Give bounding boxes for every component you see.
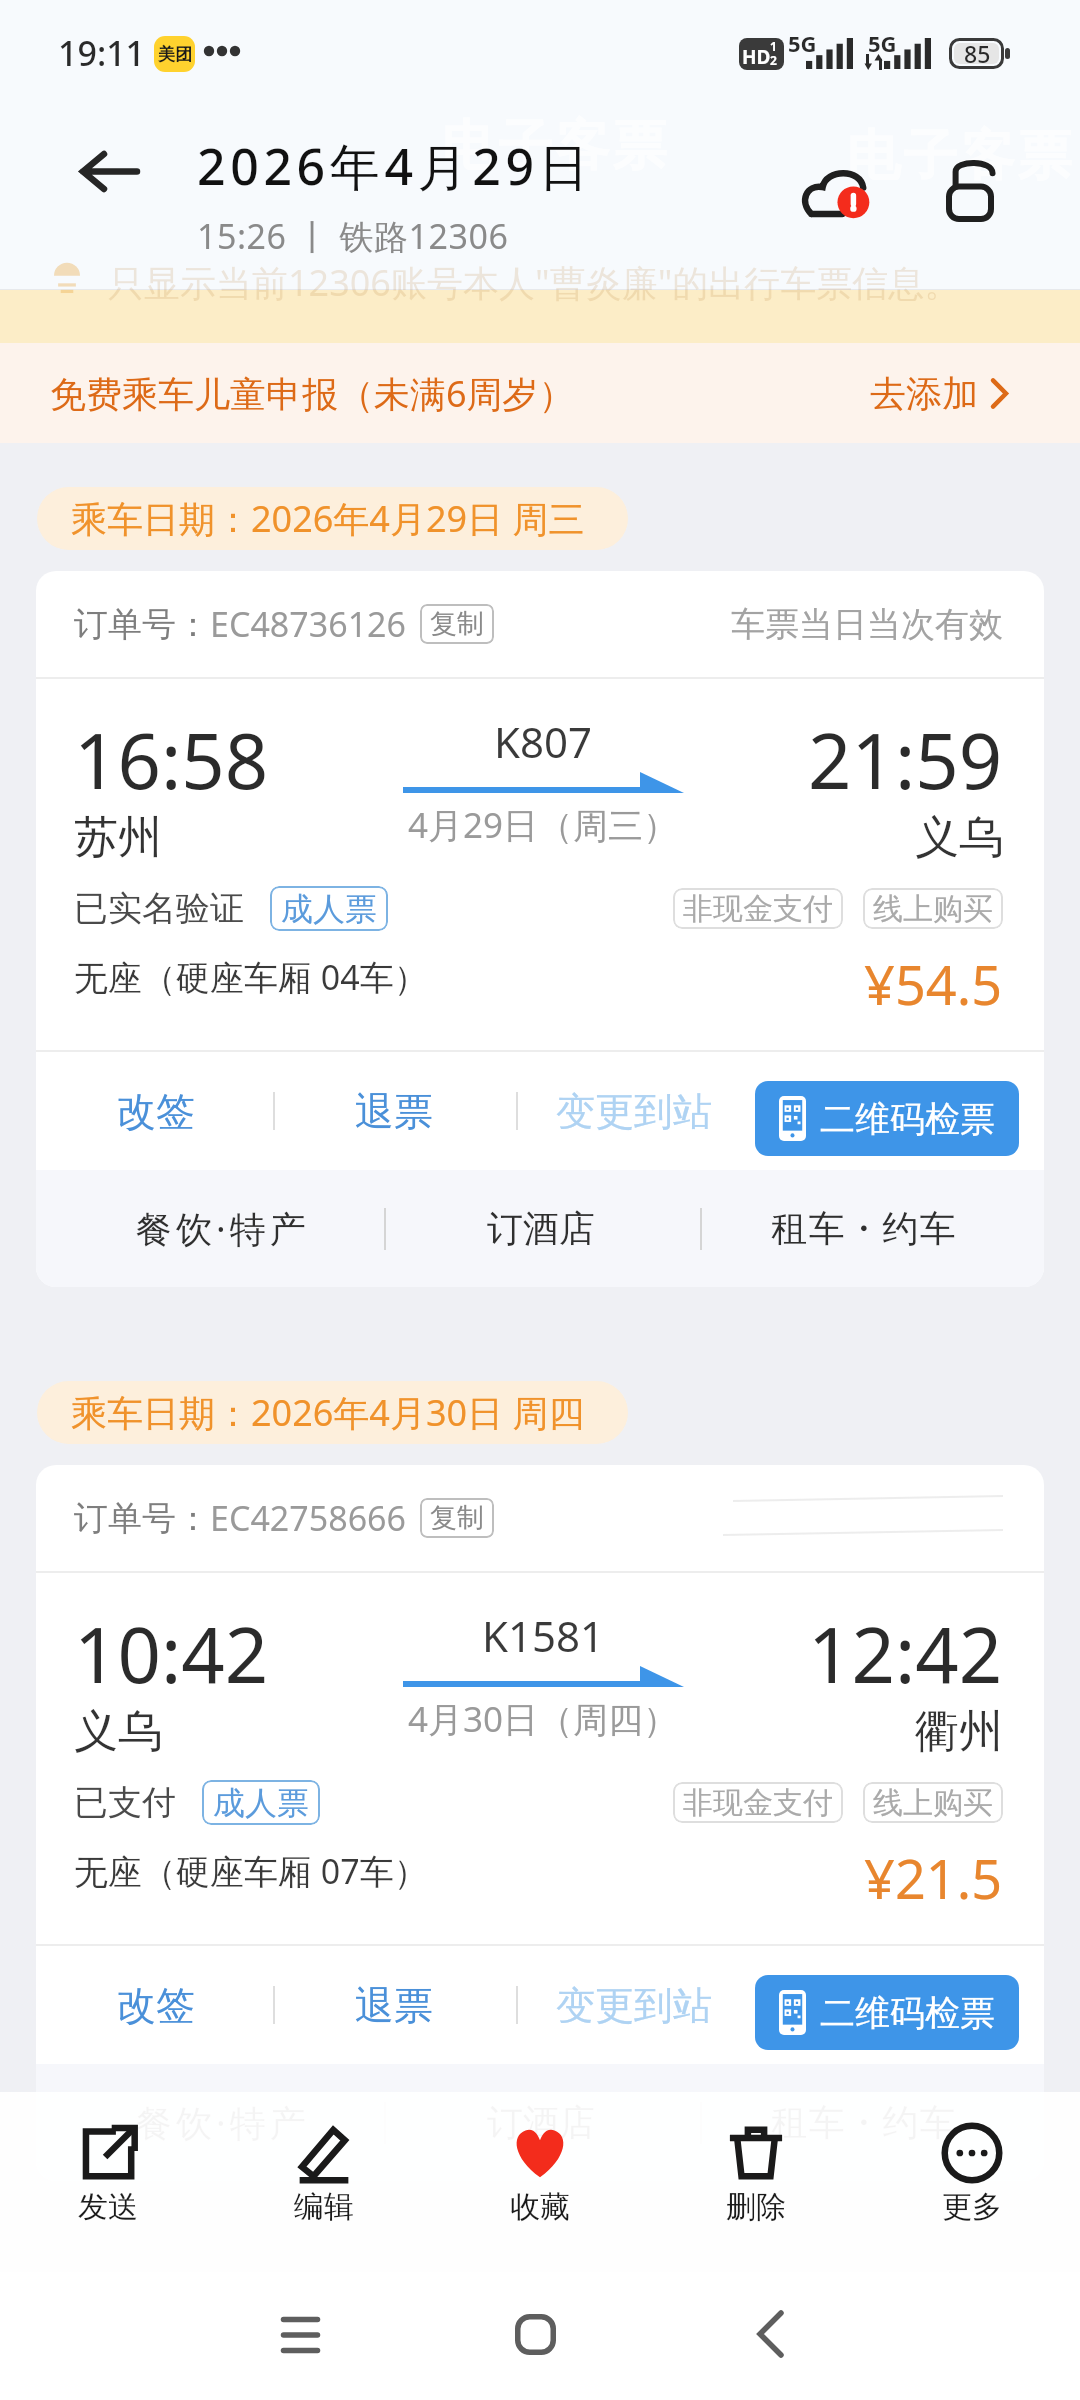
button[interactable]: 退票 bbox=[314, 1946, 474, 2064]
staticText: 12:42 bbox=[808, 1602, 1003, 1706]
button[interactable]: 订单号： bbox=[36, 1465, 1044, 1571]
button[interactable]: 订酒店 bbox=[461, 2064, 621, 2181]
staticText: 租车・约车 bbox=[771, 1206, 956, 1251]
staticText: 餐饮·特产 bbox=[136, 1204, 310, 1253]
staticText: 乘车日期：2026年4月29日 周三 bbox=[71, 494, 585, 543]
button[interactable]: 删除 bbox=[648, 2092, 864, 2272]
staticText: 成人票 bbox=[281, 889, 377, 929]
staticText: 美团 bbox=[158, 44, 192, 65]
button[interactable]: 主页 bbox=[500, 2299, 570, 2369]
staticText: 复制 bbox=[430, 607, 484, 641]
staticText: 编辑 bbox=[294, 2188, 354, 2226]
staticText: 15:26 丨 铁路12306 bbox=[197, 213, 509, 259]
staticText: 发送 bbox=[78, 2188, 138, 2226]
staticText: EC48736126 bbox=[210, 601, 406, 647]
staticText: 电子客票 bbox=[440, 112, 668, 180]
button[interactable]: 返回 bbox=[70, 131, 150, 211]
staticText: 变更到站 bbox=[556, 1981, 712, 2030]
staticText: 非现金支付 bbox=[683, 890, 833, 928]
staticText: 改签 bbox=[117, 1981, 195, 2030]
button[interactable]: 改签 bbox=[76, 1946, 236, 2064]
staticText: 2026年4月29日 bbox=[197, 132, 594, 200]
staticText: 车票当日当次有效 bbox=[731, 603, 1003, 646]
staticText: 成人票 bbox=[213, 1783, 309, 1823]
button[interactable]: 改签 bbox=[76, 1052, 236, 1170]
staticText: 4月29日（周三） bbox=[408, 801, 679, 849]
staticText: 19:11 bbox=[58, 30, 146, 76]
staticText: 删除 bbox=[726, 2188, 786, 2226]
staticText: 变更到站 bbox=[556, 1087, 712, 1136]
staticText: 衢州 bbox=[915, 1704, 1003, 1759]
button[interactable]: 解锁 bbox=[922, 143, 1018, 239]
staticText: 义乌 bbox=[74, 1704, 162, 1759]
staticText: 退票 bbox=[355, 1981, 433, 2030]
button[interactable]: 返回 bbox=[735, 2299, 805, 2369]
button[interactable]: 乘车日期：2026年4月30日 周四 bbox=[37, 1381, 628, 1444]
button[interactable]: 餐饮·特产 bbox=[112, 2064, 333, 2181]
staticText: ¥54.5 bbox=[864, 947, 1003, 1007]
staticText: 复制 bbox=[430, 1501, 484, 1535]
staticText: 只显示当前12306账号本人"曹炎廉"的出行车票信息。 bbox=[108, 258, 961, 307]
staticText: 订酒店 bbox=[487, 2100, 595, 2145]
staticText: 退票 bbox=[355, 1087, 433, 1136]
staticText: 线上购买 bbox=[873, 890, 993, 928]
staticText: 已支付 bbox=[74, 1781, 176, 1824]
button[interactable]: 二维码检票 bbox=[755, 1975, 1019, 2050]
staticText: 1 bbox=[770, 38, 777, 54]
staticText: 订单号： bbox=[74, 603, 210, 646]
button[interactable]: 收藏 bbox=[432, 2092, 648, 2272]
button[interactable]: 租车・约车 bbox=[753, 1170, 974, 1287]
button[interactable]: 退票 bbox=[314, 1052, 474, 1170]
button[interactable]: 最近任务 bbox=[265, 2300, 335, 2370]
staticText: 乘车日期：2026年4月30日 周四 bbox=[71, 1388, 585, 1437]
staticText: K807 bbox=[494, 713, 593, 770]
staticText: K1581 bbox=[482, 1607, 605, 1664]
button[interactable]: 云同步异常 bbox=[790, 144, 886, 240]
staticText: 义乌 bbox=[915, 810, 1003, 865]
staticText: 85 bbox=[964, 38, 991, 69]
staticText: 订酒店 bbox=[487, 1206, 595, 1251]
staticText: 二维码检票 bbox=[820, 1097, 995, 1141]
staticText: 改签 bbox=[117, 1087, 195, 1136]
button[interactable]: 发送 bbox=[0, 2092, 216, 2272]
button[interactable]: 租车・约车 bbox=[753, 2064, 974, 2181]
staticText: 订单号： bbox=[74, 1497, 210, 1540]
staticText: 5G bbox=[788, 28, 817, 58]
staticText: ¥21.5 bbox=[864, 1841, 1003, 1901]
staticText: 更多 bbox=[942, 2188, 1002, 2226]
button[interactable]: 二维码检票 bbox=[755, 1081, 1019, 1156]
staticText: 10:42 bbox=[74, 1602, 269, 1706]
staticText: 无座（硬座车厢 04车） bbox=[74, 954, 428, 1000]
staticText: 租车・约车 bbox=[771, 2100, 956, 2145]
staticText: 去添加 bbox=[870, 371, 978, 416]
button[interactable]: 变更到站 bbox=[554, 1052, 714, 1170]
staticText: 无座（硬座车厢 07车） bbox=[74, 1848, 428, 1894]
button[interactable]: 编辑 bbox=[216, 2092, 432, 2272]
staticText: 收藏 bbox=[510, 2188, 570, 2226]
staticText: 21:59 bbox=[808, 708, 1003, 812]
staticText: 已实名验证 bbox=[74, 887, 244, 930]
staticText: HD bbox=[742, 44, 771, 70]
staticText: EC42758666 bbox=[210, 1495, 406, 1541]
button[interactable]: 订酒店 bbox=[461, 1170, 621, 1287]
staticText: 5G bbox=[868, 28, 897, 58]
staticText: 线上购买 bbox=[873, 1784, 993, 1822]
staticText: 二维码检票 bbox=[820, 1991, 995, 2035]
button[interactable]: 乘车日期：2026年4月29日 周三 bbox=[37, 487, 628, 550]
button[interactable]: 免费乘车儿童申报（未满6周岁） bbox=[0, 343, 1080, 443]
staticText: 非现金支付 bbox=[683, 1784, 833, 1822]
button[interactable]: 更多 bbox=[864, 2092, 1080, 2272]
staticText: 苏州 bbox=[74, 810, 162, 865]
staticText: 4月30日（周四） bbox=[408, 1695, 679, 1743]
staticText: 16:58 bbox=[74, 708, 269, 812]
staticText: 电子客票 bbox=[845, 122, 1073, 190]
button[interactable]: 变更到站 bbox=[554, 1946, 714, 2064]
staticText: 餐饮·特产 bbox=[136, 2098, 310, 2147]
staticText: 2 bbox=[770, 52, 777, 68]
button[interactable]: 餐饮·特产 bbox=[112, 1170, 333, 1287]
staticText: 免费乘车儿童申报（未满6周岁） bbox=[50, 369, 575, 418]
button[interactable]: 订单号： bbox=[36, 571, 1044, 677]
